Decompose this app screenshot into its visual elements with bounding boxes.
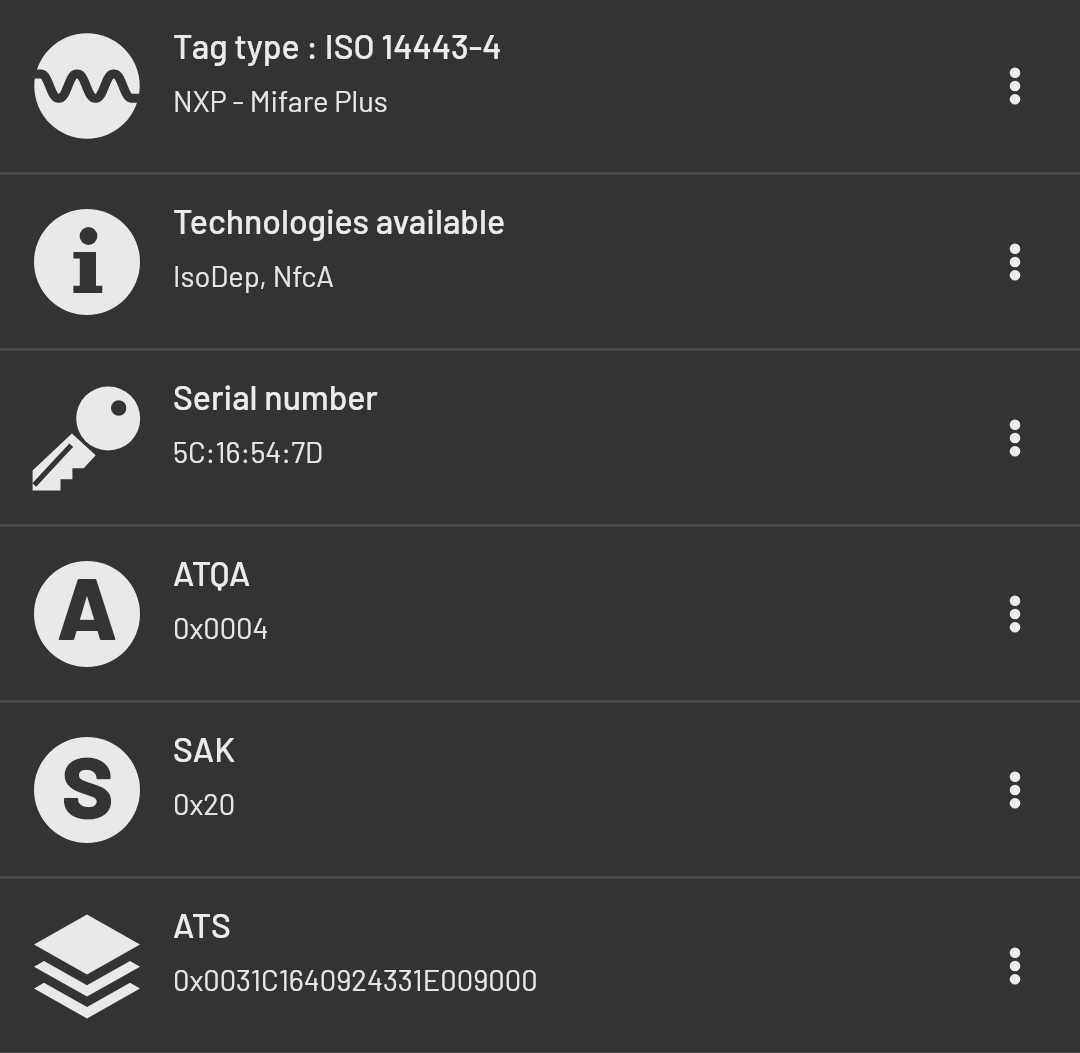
staticText: Technologies available [173, 200, 506, 241]
button[interactable]: More options [975, 197, 1055, 327]
button[interactable]: More options [975, 901, 1055, 1031]
staticText: 0x0004 [173, 610, 269, 645]
staticText: ATS [173, 904, 231, 945]
staticText: SAK [173, 728, 235, 769]
staticText: 0x20 [173, 786, 236, 821]
staticText: NXP - Mifare Plus [173, 83, 388, 118]
button[interactable]: ATS [0, 879, 1080, 1052]
button[interactable]: More options [975, 373, 1055, 503]
button[interactable]: Technologies available [0, 175, 1080, 348]
staticText: Tag type : ISO 14443-4 [173, 25, 502, 66]
button[interactable]: S [0, 703, 1080, 876]
staticText: A [56, 561, 118, 658]
button[interactable]: A [0, 527, 1080, 700]
staticText: ATQA [173, 552, 251, 593]
staticText: 0x0031C1640924331E009000 [173, 962, 538, 997]
button[interactable]: More options [975, 21, 1055, 151]
button[interactable]: More options [975, 725, 1055, 855]
button[interactable]: More options [975, 549, 1055, 679]
staticText: Serial number [173, 376, 378, 417]
staticText: IsoDep, NfcA [173, 258, 335, 293]
staticText: 5C:16:54:7D [173, 434, 323, 469]
button[interactable]: Serial number [0, 351, 1080, 524]
button[interactable]: Tag type : ISO 14443-4 [0, 0, 1080, 172]
staticText: S [61, 737, 114, 837]
